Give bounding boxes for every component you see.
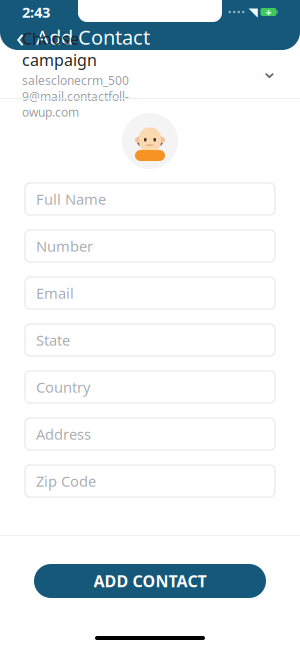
staticText: ADD CONTACT bbox=[93, 570, 206, 592]
staticText: Add Contact bbox=[36, 24, 150, 50]
button[interactable]: Choose campaign bbox=[0, 50, 300, 98]
staticText: ‹ bbox=[16, 19, 24, 55]
button[interactable]: Country bbox=[25, 371, 275, 403]
button[interactable]: Email bbox=[25, 277, 275, 309]
button[interactable]: Full Name bbox=[25, 183, 275, 215]
staticText: State bbox=[36, 330, 70, 350]
staticText: 2:43 bbox=[22, 2, 50, 22]
button[interactable]: ADD CONTACT bbox=[34, 564, 266, 598]
staticText: Choose campaign bbox=[22, 28, 97, 70]
staticText: salesclonecrm_5009@mail.contactfollowup.… bbox=[22, 72, 129, 120]
staticText: Email bbox=[36, 283, 74, 303]
staticText: Zip Code bbox=[36, 471, 96, 491]
staticText: ◥ bbox=[248, 5, 257, 19]
button[interactable]: State bbox=[25, 324, 275, 356]
staticText: Country bbox=[36, 377, 90, 397]
button[interactable]: Number bbox=[25, 230, 275, 262]
button[interactable]: Address bbox=[25, 418, 275, 450]
staticText: Full Name bbox=[36, 189, 106, 209]
staticText: Number bbox=[36, 236, 93, 256]
staticText: Address bbox=[36, 424, 91, 444]
staticText: ⌄ bbox=[261, 60, 278, 82]
staticText: + bbox=[265, 5, 271, 19]
button[interactable]: Back bbox=[8, 24, 32, 50]
button[interactable]: Zip Code bbox=[25, 465, 275, 497]
